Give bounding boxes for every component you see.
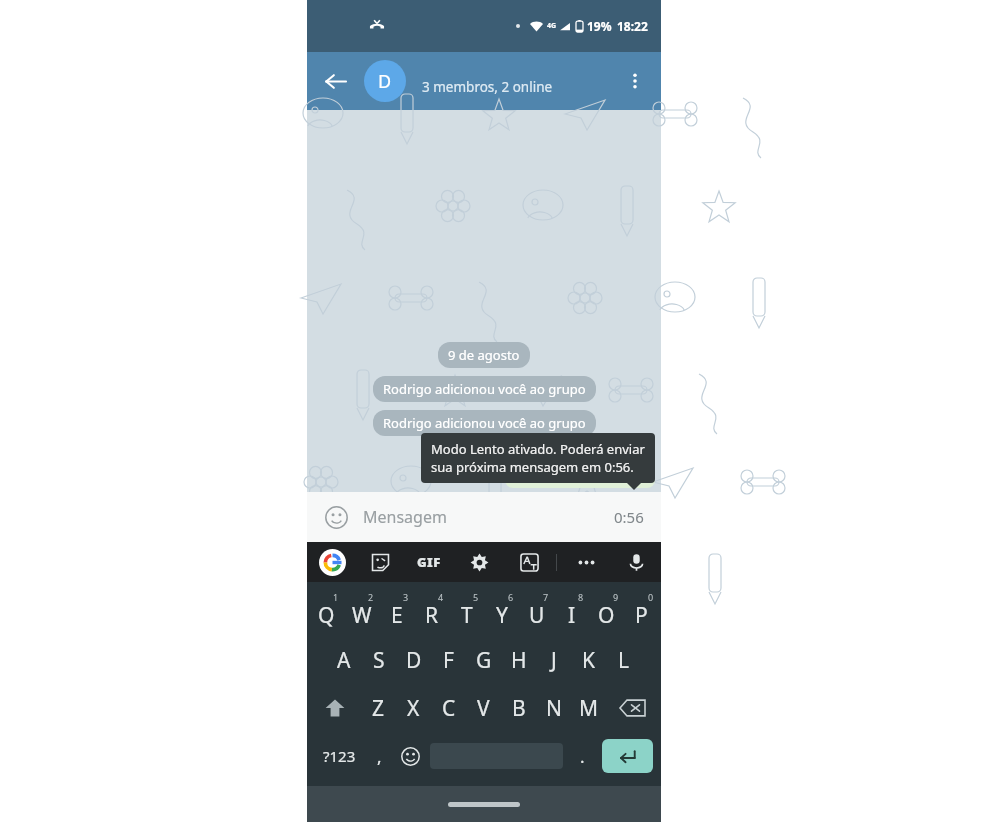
button[interactable]: Stickers <box>367 549 393 575</box>
staticText: U <box>529 601 545 630</box>
staticText: F <box>443 646 454 675</box>
button[interactable]: T <box>449 588 484 636</box>
button[interactable]: More <box>573 549 599 575</box>
button[interactable]: U <box>519 588 554 636</box>
staticText: GIF <box>417 553 441 571</box>
button[interactable]: H <box>501 636 536 684</box>
staticText: Mensagem <box>363 506 447 528</box>
staticText: C <box>442 694 456 723</box>
button[interactable]: Z <box>361 684 396 732</box>
button[interactable]: N <box>536 684 571 732</box>
staticText: Rodrigo adicionou você ao grupo <box>383 380 586 398</box>
button[interactable]: D <box>364 52 553 110</box>
button[interactable]: Emoji <box>319 500 353 534</box>
staticText: B <box>512 694 526 723</box>
staticText: Rodrigo adicionou você ao grupo <box>383 414 586 432</box>
button[interactable]: S <box>361 636 396 684</box>
staticText: S <box>373 646 385 675</box>
staticText: N <box>546 694 562 723</box>
button[interactable]: I <box>554 588 589 636</box>
button[interactable]: G <box>466 636 501 684</box>
button[interactable]: C <box>431 684 466 732</box>
button[interactable]: P <box>624 588 659 636</box>
staticText: , <box>377 745 382 768</box>
staticText: 0:56 <box>614 507 644 527</box>
staticText: 19% <box>587 18 612 34</box>
staticText: G <box>476 646 492 675</box>
staticText: E <box>391 601 403 630</box>
button[interactable]: Shift <box>309 684 361 732</box>
staticText: ?123 <box>323 746 356 766</box>
button[interactable]: Settings <box>466 549 492 575</box>
staticText: X <box>407 694 420 723</box>
staticText: D <box>406 646 422 675</box>
staticText: 3 membros, 2 online <box>422 78 553 96</box>
button[interactable]: O <box>589 588 624 636</box>
staticText: Y <box>496 601 508 630</box>
staticText: 9 de agosto <box>448 346 520 364</box>
button[interactable]: ?123 <box>315 732 364 780</box>
button[interactable]: 18:22 <box>505 442 655 488</box>
button[interactable]: 9 de agosto <box>438 342 530 368</box>
staticText: 18:22 <box>617 18 648 34</box>
button[interactable]: X <box>396 684 431 732</box>
button[interactable]: K <box>571 636 606 684</box>
button[interactable]: Google <box>319 549 346 576</box>
staticText: I <box>568 601 576 630</box>
button[interactable]: Rodrigo adicionou você ao grupo <box>373 376 596 402</box>
button[interactable]: Enter <box>602 739 653 773</box>
staticText: 18:22 <box>603 469 632 484</box>
staticText: W <box>352 601 372 630</box>
staticText: Q <box>318 601 335 630</box>
staticText: V <box>477 694 490 723</box>
button[interactable]: V <box>466 684 501 732</box>
button[interactable]: A <box>327 636 361 684</box>
button[interactable]: Modo Lento ativado. Poderá enviar sua pr… <box>421 433 655 483</box>
button[interactable]: M <box>571 684 606 732</box>
button[interactable]: Voice input <box>623 549 649 575</box>
staticText: 4 <box>438 591 444 603</box>
button[interactable]: Rodrigo adicionou você ao grupo <box>373 410 596 436</box>
button[interactable]: L <box>606 636 641 684</box>
staticText: Z <box>372 694 385 723</box>
button[interactable]: E <box>379 588 414 636</box>
staticText: L <box>618 646 630 675</box>
staticText: A <box>337 646 351 675</box>
staticText: 2 <box>368 591 374 603</box>
staticText: M <box>579 694 599 723</box>
staticText: D <box>378 69 392 94</box>
button[interactable]: R <box>414 588 449 636</box>
staticText: K <box>582 646 595 675</box>
staticText: H <box>511 646 527 675</box>
button[interactable]: Backspace <box>606 684 659 732</box>
staticText: Modo Lento ativado. Poderá enviar sua pr… <box>431 440 645 476</box>
staticText: O <box>598 601 615 630</box>
button[interactable]: . <box>567 732 598 780</box>
button[interactable]: , <box>364 732 395 780</box>
staticText: . <box>580 745 585 768</box>
staticText: 4G <box>547 21 557 31</box>
staticText: 6 <box>508 591 514 603</box>
button[interactable]: Y <box>484 588 519 636</box>
staticText: 7 <box>543 591 549 603</box>
button[interactable]: Q <box>309 588 344 636</box>
staticText: 8 <box>578 591 584 603</box>
button[interactable]: W <box>344 588 379 636</box>
button[interactable]: B <box>501 684 536 732</box>
button[interactable]: GIF <box>415 549 443 575</box>
staticText: 0 <box>648 591 654 603</box>
button[interactable]: Emoji <box>395 732 426 780</box>
staticText: T <box>461 601 473 630</box>
staticText: J <box>551 646 557 675</box>
button[interactable]: J <box>536 636 571 684</box>
button[interactable]: Translate <box>516 549 542 575</box>
staticText: R <box>425 601 439 630</box>
button[interactable]: D <box>396 636 431 684</box>
staticText: 1 <box>333 591 339 603</box>
staticText: 5 <box>473 591 479 603</box>
button[interactable]: Back <box>317 63 353 99</box>
button[interactable]: More options <box>617 63 653 99</box>
staticText: 3 <box>403 591 409 603</box>
button[interactable]: F <box>431 636 466 684</box>
